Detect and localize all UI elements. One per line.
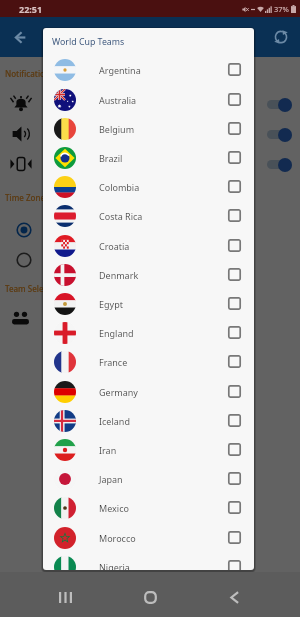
button[interactable]: Select your teams bbox=[0, 301, 300, 335]
button[interactable]: Notifications bbox=[0, 89, 300, 119]
staticText: Denmark bbox=[99, 269, 139, 281]
staticText: Costa Rica bbox=[99, 210, 143, 222]
button[interactable]: Nigeria bbox=[43, 552, 254, 570]
staticText: Select your teams bbox=[44, 312, 120, 324]
button[interactable]: Back bbox=[5, 23, 33, 51]
staticText: Argentina bbox=[99, 64, 141, 76]
staticText: 22:51 bbox=[19, 3, 43, 15]
button[interactable]: Japan bbox=[43, 464, 254, 493]
staticText: Iceland bbox=[99, 415, 130, 427]
button[interactable]: Costa Rica bbox=[43, 201, 254, 230]
staticText: Vibration bbox=[45, 158, 84, 170]
staticText: Morocco bbox=[99, 532, 136, 544]
staticText: International bbox=[43, 224, 99, 236]
staticText: Colombia bbox=[99, 181, 140, 193]
button[interactable]: Morocco bbox=[43, 523, 254, 552]
staticText: Japan bbox=[99, 473, 123, 485]
button[interactable]: Croatia bbox=[43, 231, 254, 260]
button[interactable]: Brazil bbox=[43, 143, 254, 172]
staticText: France bbox=[99, 356, 128, 368]
button[interactable]: Home bbox=[130, 577, 170, 617]
staticText: Iran bbox=[99, 444, 117, 456]
button[interactable]: Back bbox=[214, 577, 254, 617]
button[interactable]: England bbox=[43, 318, 254, 347]
staticText: Croatia bbox=[99, 240, 130, 252]
button[interactable]: France bbox=[43, 347, 254, 376]
button[interactable]: Refresh bbox=[267, 23, 295, 51]
staticText: Time Zone bbox=[5, 192, 45, 203]
button[interactable]: Argentina bbox=[43, 55, 254, 84]
staticText: Germany bbox=[99, 386, 138, 398]
staticText: Belgium bbox=[99, 123, 135, 135]
button[interactable]: Germany bbox=[43, 377, 254, 406]
button[interactable]: Denmark bbox=[43, 260, 254, 289]
button[interactable]: Iceland bbox=[43, 406, 254, 435]
staticText: Notifications bbox=[5, 68, 54, 79]
button[interactable]: Recent apps bbox=[45, 577, 85, 617]
staticText: Notifications bbox=[45, 98, 99, 110]
button[interactable]: Australia bbox=[43, 85, 254, 114]
button[interactable]: Iran bbox=[43, 435, 254, 464]
staticText: Team Selection bbox=[5, 283, 63, 294]
button[interactable]: Egypt bbox=[43, 289, 254, 318]
button[interactable]: Based on Device Time bbox=[0, 245, 300, 275]
staticText: Nigeria bbox=[99, 561, 130, 570]
button[interactable]: Colombia bbox=[43, 172, 254, 201]
button[interactable]: International bbox=[0, 215, 300, 245]
staticText: England bbox=[99, 327, 134, 339]
button[interactable]: Sound bbox=[0, 119, 300, 149]
button[interactable]: Belgium bbox=[43, 114, 254, 143]
staticText: World Cup Teams bbox=[52, 36, 125, 48]
staticText: Brazil bbox=[99, 152, 123, 164]
staticText: Based on Device Time bbox=[43, 254, 136, 266]
staticText: Sound bbox=[45, 128, 73, 140]
staticText: 37% bbox=[274, 4, 289, 14]
button[interactable]: Mexico bbox=[43, 493, 254, 522]
staticText: Australia bbox=[99, 94, 137, 106]
button[interactable]: Vibration bbox=[0, 149, 300, 179]
staticText: Mexico bbox=[99, 502, 129, 514]
staticText: Egypt bbox=[99, 298, 123, 310]
